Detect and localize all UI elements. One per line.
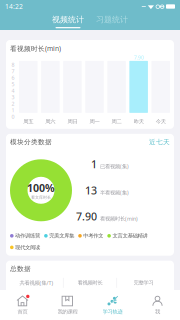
staticText: 共看视频(集/T) — [19, 279, 53, 286]
staticText: 总数据 — [10, 265, 31, 273]
staticText: 周日 — [67, 118, 77, 125]
staticText: 看视频时长(min) — [10, 44, 61, 53]
staticText: 0 — [11, 113, 14, 120]
staticText: 看文库时长 — [31, 195, 51, 200]
staticText: 4 — [11, 87, 14, 94]
staticText: 6 — [11, 74, 14, 81]
staticText: 14:22 — [5, 2, 23, 11]
staticText: 100% — [27, 181, 55, 195]
staticText: 视频统计 — [52, 15, 84, 24]
staticText: 1 — [11, 107, 14, 114]
staticText: 周一 — [89, 118, 99, 125]
button[interactable]: 视频统计 — [49, 13, 87, 30]
staticText: 13 — [85, 183, 97, 197]
staticText: 动作训练营 — [15, 232, 40, 239]
staticText: 完整学习 — [133, 280, 153, 286]
staticText: 1 — [91, 157, 97, 171]
button[interactable]: 习题统计 — [93, 13, 131, 30]
staticText: 我的课程 — [57, 308, 77, 315]
staticText: 已看视频(集) — [100, 163, 129, 170]
staticText: 3 — [11, 94, 14, 101]
staticText: 8 — [11, 61, 14, 68]
staticText: 7.90 — [76, 209, 97, 224]
button[interactable]: 首页 — [0, 290, 45, 320]
staticText: 学习轨迹 — [102, 308, 122, 315]
staticText: 模块分类数据 — [10, 138, 52, 146]
staticText: 周二 — [112, 118, 122, 125]
button[interactable]: 我的课程 — [45, 290, 90, 320]
staticText: 7.90 — [134, 54, 144, 61]
staticText: 习题统计 — [96, 15, 128, 24]
staticText: 现代文阅读 — [15, 244, 40, 251]
staticText: 看视频时长(min) — [100, 215, 138, 222]
staticText: 文言文基础精讲 — [112, 232, 147, 239]
staticText: 首页 — [17, 308, 27, 315]
staticText: 我 — [155, 308, 160, 315]
staticText: 看视频时长 — [77, 280, 102, 286]
button[interactable]: 我 — [135, 290, 180, 320]
staticText: 今天 — [156, 118, 166, 125]
staticText: 近七天 — [149, 138, 170, 146]
button[interactable]: 学习轨迹 — [90, 290, 135, 320]
staticText: 2 — [11, 100, 14, 107]
staticText: 半看视频(集) — [100, 189, 129, 196]
staticText: 完美文库集 — [49, 232, 74, 239]
staticText: 5 — [11, 81, 14, 88]
staticText: 7 — [11, 68, 14, 75]
staticText: 昨天 — [134, 118, 144, 125]
staticText: 周六 — [45, 118, 55, 125]
staticText: 周五 — [23, 118, 33, 125]
staticText: 中考作文 — [83, 232, 103, 239]
button[interactable]: 近七天 — [149, 138, 170, 146]
